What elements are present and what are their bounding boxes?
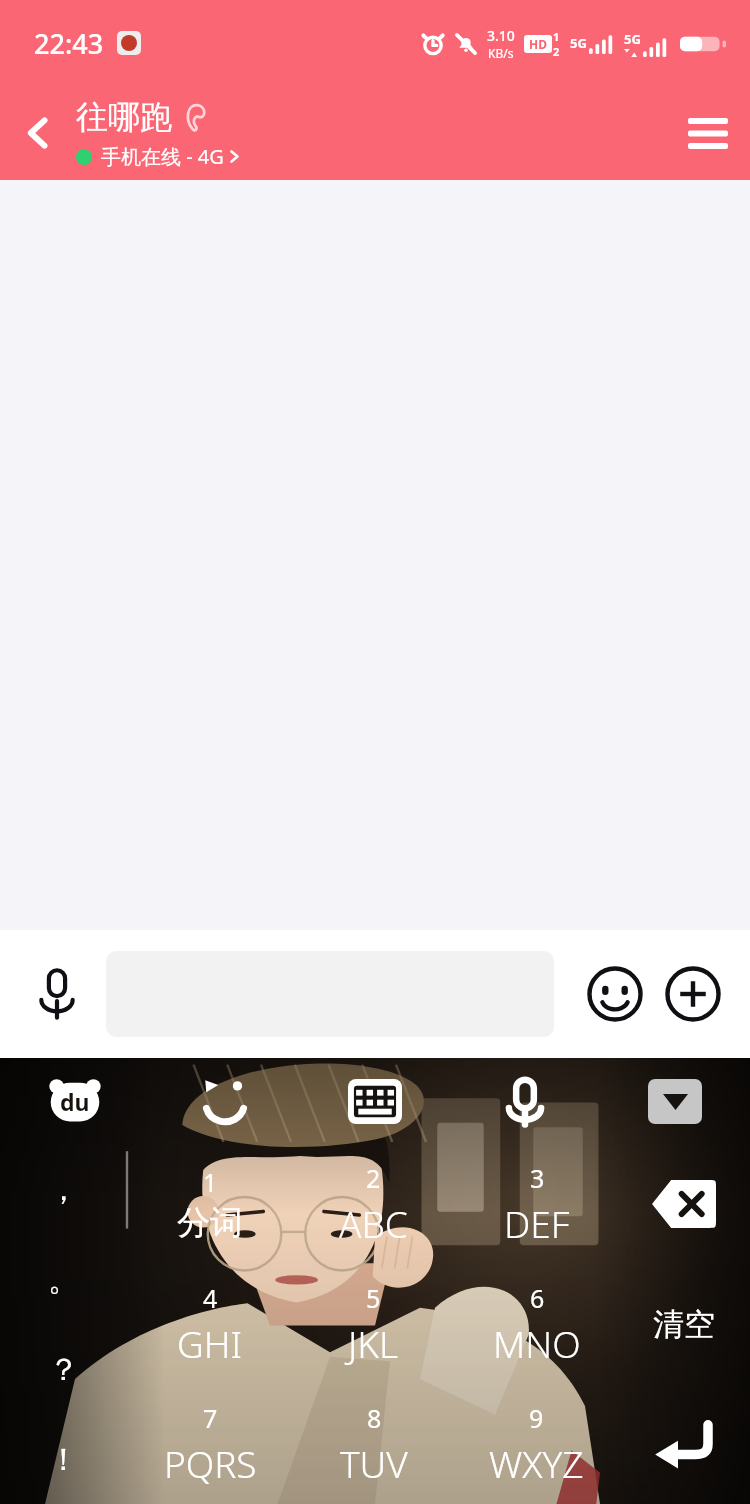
button[interactable]: Keyboard layout <box>300 1058 450 1144</box>
staticText: TUV <box>340 1438 408 1488</box>
button[interactable]: 4 <box>128 1264 292 1384</box>
staticText: 6 <box>530 1281 545 1315</box>
button[interactable]: Emoticons <box>150 1058 300 1144</box>
staticText: 7 <box>203 1401 218 1435</box>
button[interactable]: Voice input <box>450 1058 600 1144</box>
button[interactable]: Back <box>0 95 76 171</box>
staticText: 分词 <box>177 1202 243 1244</box>
button[interactable]: 。 <box>0 1234 126 1324</box>
button[interactable]: 6 <box>455 1264 618 1384</box>
button[interactable]: Hide keyboard <box>600 1058 750 1144</box>
staticText: 清空 <box>653 1305 715 1344</box>
button[interactable]: 8 <box>292 1384 455 1504</box>
button[interactable]: Voice message <box>22 959 92 1029</box>
staticText: 1 <box>203 1165 218 1199</box>
staticText: 4 <box>203 1281 218 1315</box>
button[interactable]: ！ <box>0 1414 126 1504</box>
button[interactable]: Backspace <box>618 1144 750 1264</box>
staticText: DEF <box>504 1198 570 1248</box>
button[interactable]: ， <box>0 1144 126 1234</box>
button[interactable]: Emoji <box>580 959 650 1029</box>
staticText: 9 <box>529 1401 544 1435</box>
staticText: ！ <box>48 1440 79 1479</box>
staticText: 1 <box>553 29 560 44</box>
staticText: 5G <box>624 30 641 48</box>
button[interactable]: Menu <box>666 91 750 175</box>
staticText: KB/s <box>488 45 514 61</box>
staticText: 往哪跑 <box>76 97 172 137</box>
staticText: 。 <box>48 1260 79 1299</box>
button[interactable]: 2 <box>292 1144 455 1264</box>
staticText: 8 <box>367 1401 382 1435</box>
button[interactable]: 3 <box>455 1144 618 1264</box>
staticText: ， <box>48 1170 79 1209</box>
button[interactable]: More options <box>658 959 728 1029</box>
staticText: ？ <box>48 1350 79 1389</box>
staticText: 2 <box>553 44 560 59</box>
button[interactable]: ？ <box>0 1324 126 1414</box>
button[interactable]: 5 <box>292 1264 455 1384</box>
staticText: 3.10 <box>487 26 515 45</box>
staticText: 3 <box>530 1161 545 1195</box>
staticText: ABC <box>339 1198 408 1248</box>
staticText: 22:43 <box>34 25 104 62</box>
staticText: 2 <box>366 1161 381 1195</box>
button[interactable]: 清空 <box>618 1264 750 1384</box>
staticText: GHI <box>177 1318 243 1368</box>
staticText: MNO <box>493 1318 581 1368</box>
staticText: HD <box>529 36 547 52</box>
button[interactable]: Enter <box>618 1384 750 1504</box>
staticText: JKL <box>348 1318 399 1368</box>
staticText: 手机在线 - 4G <box>101 143 224 170</box>
button[interactable]: 7 <box>128 1384 292 1504</box>
staticText: 5G <box>570 34 587 52</box>
button[interactable]: 9 <box>455 1384 618 1504</box>
staticText: WXYZ <box>489 1438 584 1488</box>
staticText: 5 <box>366 1281 381 1315</box>
button[interactable]: Baidu input <box>0 1058 150 1144</box>
staticText: PQRS <box>164 1438 257 1488</box>
staticText: du <box>60 1086 90 1117</box>
button[interactable]: 1 <box>128 1144 292 1264</box>
button[interactable]: 往哪跑 <box>76 97 666 170</box>
